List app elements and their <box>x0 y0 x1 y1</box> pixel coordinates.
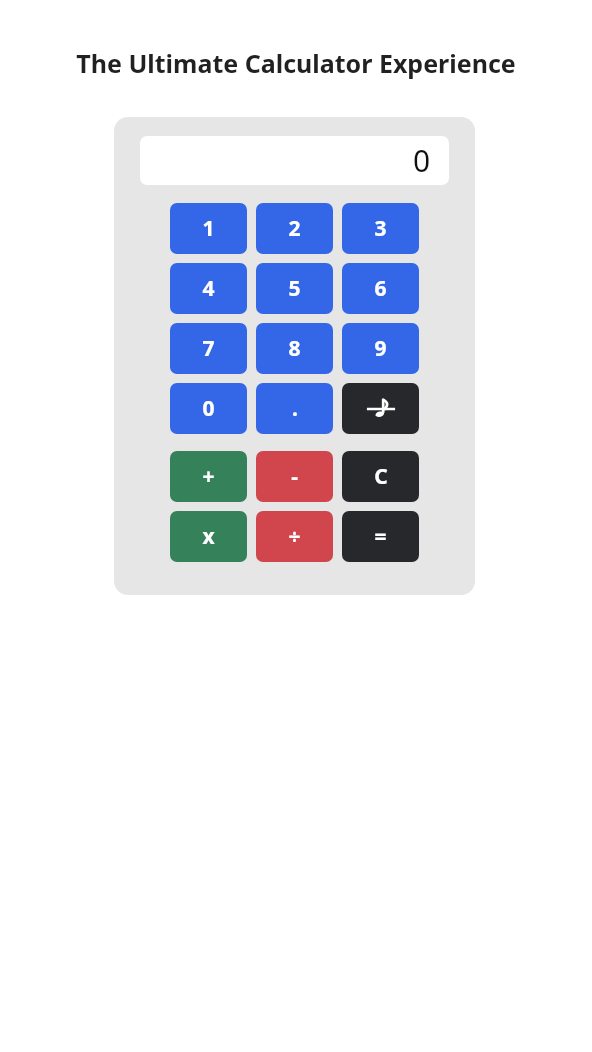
staticText: 7 <box>202 334 215 363</box>
button[interactable]: 6 <box>342 263 419 314</box>
button[interactable]: 7 <box>170 323 247 374</box>
button[interactable]: 5 <box>256 263 333 314</box>
button[interactable]: 2 <box>256 203 333 254</box>
staticText: The Ultimate Calculator Experience <box>0 46 592 80</box>
button[interactable]: Toggle sound <box>342 383 419 434</box>
staticText: + <box>202 462 215 491</box>
button[interactable]: ÷ <box>256 511 333 562</box>
button[interactable]: 0 <box>170 383 247 434</box>
staticText: 0 <box>202 394 215 423</box>
staticText: 3 <box>374 214 387 243</box>
button[interactable]: . <box>256 383 333 434</box>
button[interactable]: 4 <box>170 263 247 314</box>
button[interactable]: x <box>170 511 247 562</box>
staticText: C <box>374 462 388 491</box>
staticText: 8 <box>288 334 301 363</box>
button[interactable]: 9 <box>342 323 419 374</box>
staticText: x <box>202 522 215 551</box>
button[interactable]: 0 <box>140 136 449 185</box>
button[interactable]: 1 <box>170 203 247 254</box>
button[interactable]: C <box>342 451 419 502</box>
staticText: 5 <box>288 274 301 303</box>
button[interactable]: = <box>342 511 419 562</box>
staticText: - <box>291 462 298 491</box>
staticText: 2 <box>288 214 301 243</box>
staticText: 0 <box>413 140 431 181</box>
button[interactable]: - <box>256 451 333 502</box>
staticText: 9 <box>374 334 387 363</box>
button[interactable]: + <box>170 451 247 502</box>
staticText: 6 <box>374 274 387 303</box>
staticText: 4 <box>202 274 215 303</box>
button[interactable]: 3 <box>342 203 419 254</box>
staticText: 1 <box>202 214 215 243</box>
staticText: ÷ <box>288 522 301 551</box>
staticText: . <box>292 394 298 423</box>
button[interactable]: 8 <box>256 323 333 374</box>
staticText: = <box>374 522 387 551</box>
